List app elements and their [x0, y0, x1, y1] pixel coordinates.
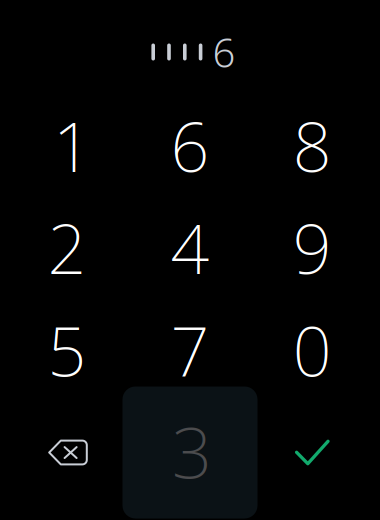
button[interactable]: 9: [251, 196, 374, 298]
staticText: 2: [47, 202, 86, 293]
button[interactable]: 1: [11, 94, 134, 196]
staticText: 0: [293, 305, 332, 395]
button[interactable]: Delete: [7, 401, 129, 503]
button[interactable]: 7: [129, 299, 251, 401]
button[interactable]: 6: [129, 94, 251, 196]
staticText: 6: [213, 25, 236, 78]
button[interactable]: 8: [251, 94, 374, 196]
staticText: 4: [170, 202, 209, 293]
button[interactable]: 0: [251, 299, 374, 401]
button[interactable]: 2: [6, 196, 128, 298]
staticText: 7: [170, 305, 209, 395]
staticText: 8: [293, 100, 332, 191]
staticText: 1: [53, 100, 92, 191]
staticText: 6: [170, 100, 209, 191]
button[interactable]: 5: [6, 299, 128, 401]
button[interactable]: Confirm: [251, 401, 374, 503]
staticText: 9: [293, 202, 332, 293]
staticText: 3: [172, 404, 212, 498]
button[interactable]: 3: [122, 386, 257, 518]
staticText: 5: [47, 305, 86, 395]
button[interactable]: 4: [129, 196, 251, 298]
